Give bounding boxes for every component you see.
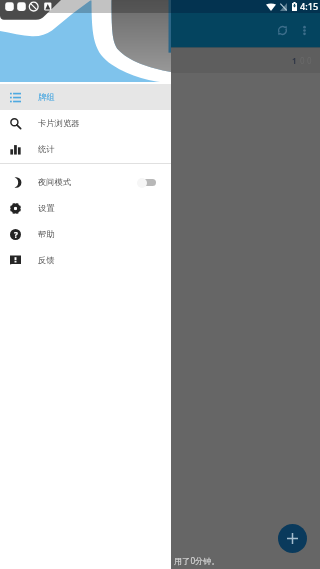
button[interactable]: More options [294, 20, 314, 40]
staticText: 0 [307, 55, 312, 66]
button[interactable]: ? [0, 221, 171, 247]
staticText: 1 [292, 55, 297, 66]
button[interactable]: 统计 [0, 136, 171, 162]
button[interactable]: 夜间模式 [0, 169, 171, 195]
staticText: 4:15 [300, 0, 319, 13]
staticText: 反馈 [38, 255, 55, 265]
button[interactable]: Sync [270, 18, 294, 42]
staticText: 夜间模式 [38, 177, 72, 187]
button[interactable]: 牌组 [0, 84, 171, 110]
staticText: 0 [300, 55, 305, 66]
staticText: 牌组 [38, 92, 55, 102]
staticText: 用了0分钟。 [174, 555, 220, 566]
staticText: 统计 [38, 144, 55, 154]
button[interactable]: Add [278, 524, 307, 553]
button[interactable]: 设置 [0, 195, 171, 221]
staticText: 帮助 [38, 229, 55, 239]
button[interactable]: 卡片浏览器 [0, 110, 171, 136]
staticText: 卡片浏览器 [38, 118, 80, 128]
button[interactable]: 反馈 [0, 247, 171, 273]
staticText: 设置 [38, 203, 55, 213]
staticText: ? [14, 229, 18, 240]
